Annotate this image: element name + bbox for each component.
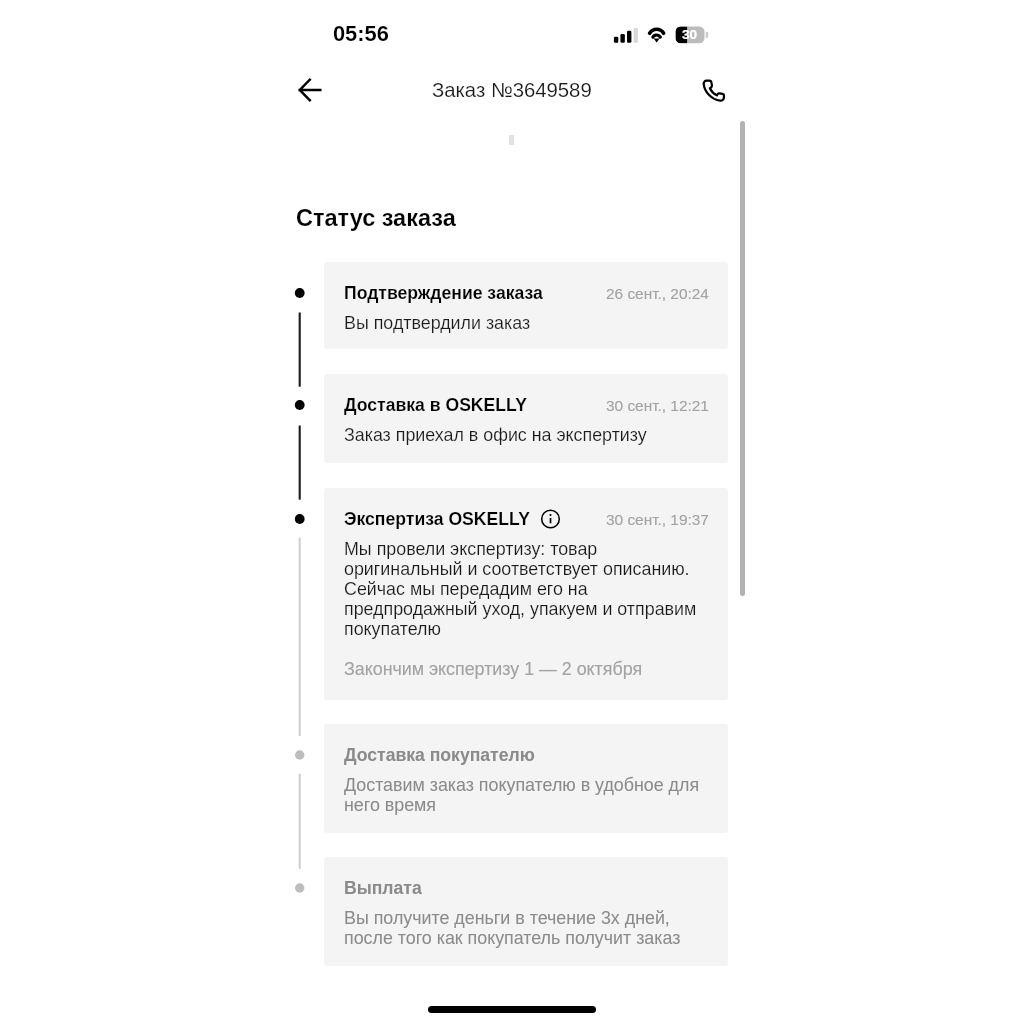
staticText: 26 сент., 20:24 xyxy=(606,285,709,302)
staticText: Подтверждение заказа xyxy=(344,283,543,303)
button[interactable]: Call xyxy=(692,68,736,112)
staticText: Заказ приехал в офис на экспертизу xyxy=(344,425,647,445)
staticText: 30 сент., 12:21 xyxy=(606,397,709,414)
button[interactable]: Выплата xyxy=(324,857,728,966)
staticText: Доставка в OSKELLY xyxy=(344,395,527,415)
staticText: Вы подтвердили заказ xyxy=(344,313,531,333)
button[interactable]: Подтверждение заказа xyxy=(324,262,728,349)
button[interactable]: Экспертиза OSKELLY xyxy=(324,488,728,700)
button[interactable]: Доставка покупателю xyxy=(324,724,728,833)
staticText: Закончим экспертизу 1 — 2 октября xyxy=(344,659,643,679)
staticText: Выплата xyxy=(344,878,422,898)
button[interactable]: Back xyxy=(288,68,332,112)
staticText: Статус заказа xyxy=(296,205,456,231)
staticText: Мы провели экспертизу: товар оригинальны… xyxy=(344,539,709,639)
staticText: 30 xyxy=(682,27,698,42)
staticText: Доставка покупателю xyxy=(344,745,535,765)
staticText: Доставим заказ покупателю в удобное для … xyxy=(344,775,709,815)
staticText: 05:56 xyxy=(333,21,389,45)
staticText: Экспертиза OSKELLY xyxy=(344,509,530,529)
staticText: Вы получите деньги в течение 3х дней, по… xyxy=(344,908,709,948)
staticText: 30 сент., 19:37 xyxy=(606,511,709,528)
staticText: Заказ №3649589 xyxy=(432,79,592,102)
button[interactable]: Доставка в OSKELLY xyxy=(324,374,728,463)
